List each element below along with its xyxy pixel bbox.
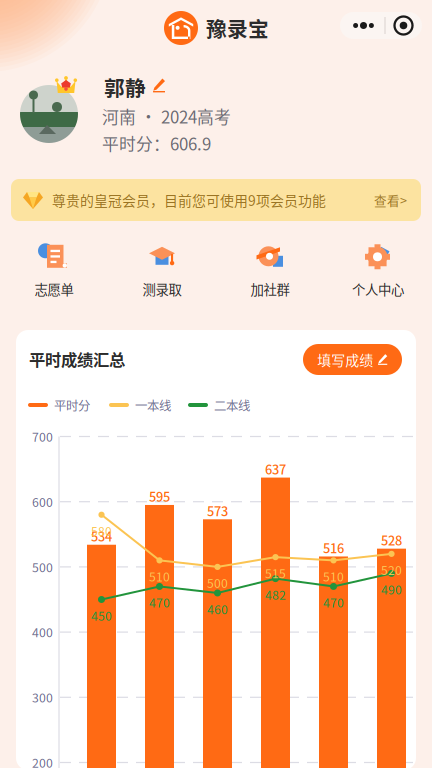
staticText: 200 — [32, 753, 53, 768]
staticText: 测录取 — [142, 279, 181, 299]
staticText: 400 — [32, 623, 53, 641]
staticText: 580 — [91, 522, 112, 539]
staticText: 600 — [32, 493, 53, 510]
staticText: 637 — [265, 460, 286, 478]
staticText: 490 — [381, 580, 402, 598]
staticText: 500 — [32, 558, 53, 576]
staticText: 520 — [381, 561, 402, 579]
staticText: 平时分：606.9 — [102, 131, 211, 155]
staticText: 查看> — [374, 191, 407, 209]
staticText: 534 — [91, 527, 112, 545]
button[interactable]: 个人中心 — [324, 239, 432, 301]
staticText: 470 — [149, 593, 170, 611]
staticText: 志愿单 — [34, 279, 73, 299]
staticText: 郭静 — [104, 72, 146, 102]
staticText: 450 — [91, 606, 112, 624]
staticText: 平时分 — [54, 396, 90, 414]
staticText: 470 — [323, 593, 344, 611]
staticText: 一本线 — [135, 396, 171, 414]
staticText: 595 — [149, 487, 170, 505]
staticText: 500 — [207, 574, 228, 592]
staticText: 填写成绩 — [317, 349, 373, 370]
button[interactable]: 尊贵的皇冠会员，目前您可使用9项会员功能 — [11, 179, 421, 221]
staticText: 加社群 — [250, 279, 289, 299]
button[interactable]: 志愿单 — [0, 239, 108, 301]
staticText: 573 — [207, 501, 228, 520]
staticText: 528 — [381, 531, 402, 549]
staticText: 300 — [32, 688, 53, 706]
button[interactable]: 填写成绩 — [303, 344, 402, 375]
staticText: 河南 · 2024高考 — [102, 104, 231, 128]
staticText: 516 — [323, 538, 344, 557]
staticText: 510 — [149, 567, 170, 585]
staticText: 482 — [265, 586, 286, 603]
staticText: 515 — [265, 564, 286, 582]
button[interactable]: 更多 — [340, 12, 422, 39]
staticText: 豫录宝 — [206, 13, 269, 43]
staticText: 510 — [323, 567, 344, 585]
button[interactable]: 加社群 — [216, 239, 324, 301]
button[interactable]: 编辑资料 — [150, 76, 168, 95]
button[interactable]: 测录取 — [108, 239, 216, 301]
staticText: 460 — [207, 600, 228, 618]
staticText: 平时成绩汇总 — [29, 347, 125, 371]
staticText: 尊贵的皇冠会员，目前您可使用9项会员功能 — [52, 190, 326, 210]
staticText: 二本线 — [214, 396, 250, 414]
staticText: 700 — [32, 427, 53, 445]
staticText: 个人中心 — [352, 279, 404, 299]
